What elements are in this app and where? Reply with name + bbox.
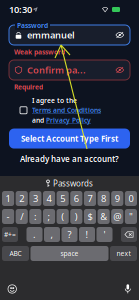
staticText: 4 <box>46 192 51 205</box>
staticText: $ <box>87 210 92 223</box>
staticText: #+= <box>4 230 16 239</box>
button[interactable]: : <box>29 209 41 224</box>
staticText: Weak password <box>14 48 65 56</box>
staticText: Privacy Policy <box>46 116 91 125</box>
button[interactable]: / <box>16 209 28 224</box>
button[interactable]: 6 <box>70 191 82 206</box>
staticText: 5 <box>60 192 65 205</box>
staticText: ( <box>61 210 64 223</box>
staticText: 10:30 <box>9 3 32 16</box>
button[interactable]: Emoji <box>8 285 16 293</box>
staticText: Passwords <box>53 178 93 189</box>
button[interactable]: next <box>110 246 137 261</box>
staticText: & <box>100 210 107 223</box>
button[interactable]: 3 <box>29 191 41 206</box>
button[interactable]: @ <box>111 209 123 224</box>
staticText: 8 <box>101 192 106 205</box>
button[interactable]: ) <box>70 209 82 224</box>
staticText: ; <box>47 210 50 223</box>
button[interactable]: 1 <box>2 191 14 206</box>
button[interactable]: - <box>2 209 14 224</box>
staticText: emmanuel <box>27 29 75 41</box>
button[interactable]: #+= <box>2 227 18 242</box>
button[interactable]: 9 <box>111 191 123 206</box>
button[interactable]: , <box>44 227 60 242</box>
staticText: 3 <box>33 192 38 205</box>
staticText: I agree to the <box>32 96 77 105</box>
button[interactable]: I agree to the <box>9 96 130 125</box>
staticText: ? <box>67 228 71 241</box>
staticText: 9 <box>115 192 120 205</box>
button[interactable]: ( <box>57 209 69 224</box>
staticText: Required <box>14 83 43 91</box>
button[interactable]: " <box>125 209 137 224</box>
staticText: . <box>33 228 36 241</box>
staticText: / <box>20 210 23 223</box>
button[interactable]: 2 <box>16 191 28 206</box>
button[interactable]: 4 <box>43 191 55 206</box>
staticText: 0 <box>128 192 133 205</box>
button[interactable]: $ <box>84 209 96 224</box>
button[interactable]: ' <box>96 227 112 242</box>
staticText: Select Account Type First <box>21 133 118 144</box>
staticText: - <box>7 210 10 223</box>
staticText: 6 <box>74 192 79 205</box>
staticText: 2 <box>19 192 24 205</box>
button[interactable]: Select Account Type First <box>9 129 130 149</box>
staticText: ! <box>85 228 88 241</box>
staticText: space <box>60 249 78 258</box>
staticText: @ <box>113 210 121 223</box>
button[interactable]: ; <box>43 209 55 224</box>
staticText: next <box>116 249 130 258</box>
staticText: Terms and Conditions <box>32 106 101 115</box>
staticText: , <box>50 228 53 241</box>
staticText: " <box>129 210 133 223</box>
button[interactable]: & <box>98 209 110 224</box>
staticText: Password <box>17 21 48 30</box>
button[interactable]: 8 <box>97 191 110 206</box>
staticText: and <box>32 116 46 125</box>
button[interactable]: Dictate <box>125 284 131 294</box>
staticText: Confirm pa... <box>27 64 86 76</box>
button[interactable]: . <box>26 227 42 242</box>
button[interactable]: 0 <box>125 191 137 206</box>
button[interactable]: Delete <box>121 227 137 242</box>
button[interactable]: Passwords <box>0 176 139 191</box>
staticText: 1 <box>6 192 11 205</box>
staticText: ' <box>103 228 105 241</box>
staticText: ABC <box>9 249 21 258</box>
button[interactable]: 7 <box>84 191 96 206</box>
button[interactable]: ABC <box>2 246 29 261</box>
staticText: Already have an account? <box>20 154 119 164</box>
staticText: : <box>34 210 37 223</box>
button[interactable]: 5 <box>57 191 69 206</box>
staticText: 7 <box>87 192 92 205</box>
button[interactable]: ? <box>61 227 77 242</box>
button[interactable]: ! <box>79 227 95 242</box>
button[interactable]: space <box>30 246 108 261</box>
staticText: ) <box>75 210 78 223</box>
